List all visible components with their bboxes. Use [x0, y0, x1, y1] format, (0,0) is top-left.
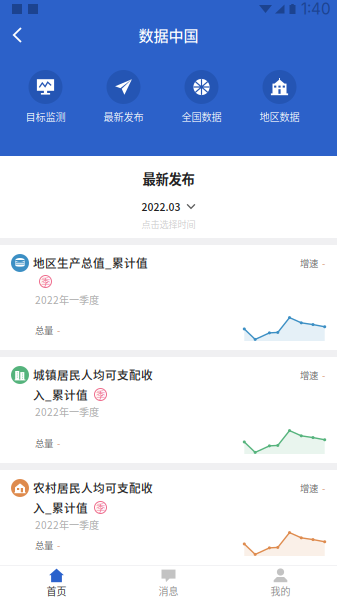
staticText: 地区数据	[259, 109, 299, 124]
staticText: 入_累计值	[33, 386, 88, 403]
staticText: 入_累计值	[33, 499, 88, 516]
button[interactable]: 全国数据	[162, 70, 240, 123]
staticText: -	[57, 323, 60, 337]
staticText: 总量	[35, 323, 53, 337]
button[interactable]: 消息	[112, 566, 224, 600]
staticText: 首页	[46, 584, 66, 598]
staticText: 季	[96, 388, 105, 401]
staticText: 2022.03	[141, 199, 180, 214]
staticText: 数据中国	[138, 24, 198, 46]
staticText: 最新发布	[142, 169, 194, 188]
staticText: 农村居民人均可支配收	[33, 479, 153, 496]
staticText: 城镇居民人均可支配收	[33, 366, 153, 383]
button[interactable]: 农村居民人均可支配收	[0, 470, 337, 565]
staticText: 2022年一季度	[35, 517, 99, 532]
staticText: 总量	[35, 436, 53, 450]
button[interactable]: 最新发布	[84, 70, 162, 123]
button[interactable]: Back	[0, 20, 35, 50]
button[interactable]: 首页	[0, 566, 112, 600]
staticText: 季	[41, 275, 50, 288]
button[interactable]: 地区数据	[240, 70, 318, 123]
button[interactable]: 我的	[224, 566, 336, 600]
staticText: 最新发布	[103, 109, 143, 124]
staticText: 地区生产总值_累计值	[33, 254, 148, 271]
staticText: -	[322, 481, 325, 495]
staticText: 点击选择时间	[141, 217, 195, 231]
staticText: 季	[96, 501, 105, 514]
staticText: 目标监测	[25, 109, 65, 124]
staticText: 消息	[158, 584, 178, 598]
staticText: -	[322, 368, 325, 382]
staticText: -	[322, 256, 325, 270]
staticText: -	[57, 538, 60, 552]
button[interactable]: 2022.03	[135, 199, 201, 214]
button[interactable]: 目标监测	[6, 70, 84, 123]
staticText: 增速	[300, 368, 318, 382]
staticText: 增速	[300, 256, 318, 270]
staticText: 1:40	[301, 0, 331, 18]
staticText: -	[57, 436, 60, 450]
staticText: 总量	[35, 538, 53, 552]
staticText: 我的	[270, 584, 290, 598]
staticText: 2022年一季度	[35, 404, 99, 419]
staticText: 2022年一季度	[35, 292, 99, 307]
staticText: 增速	[300, 481, 318, 495]
staticText: 全国数据	[181, 109, 221, 124]
button[interactable]: 城镇居民人均可支配收	[0, 357, 337, 463]
button[interactable]: 地区生产总值_累计值	[0, 245, 337, 350]
